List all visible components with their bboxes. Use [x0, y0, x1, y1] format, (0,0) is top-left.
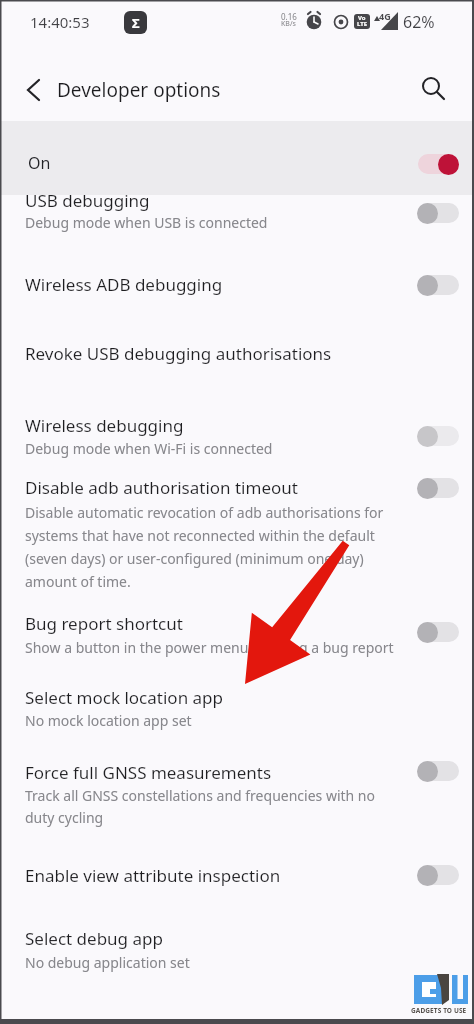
staticText: KB/s: [281, 19, 296, 29]
button[interactable]: On: [0, 121, 474, 195]
button[interactable]: Revoke USB debugging authorisations: [0, 325, 474, 377]
staticText: Vo: [358, 14, 366, 22]
button[interactable]: Force full GNSS measurements: [0, 755, 474, 845]
button[interactable]: Select debug app: [0, 910, 474, 970]
staticText: duty cycling: [25, 808, 104, 827]
staticText: USB debugging: [25, 195, 150, 212]
staticText: No debug application set: [25, 953, 190, 972]
staticText: Wireless debugging: [25, 414, 184, 437]
button[interactable]: Enable view attribute inspection: [0, 845, 474, 897]
staticText: Show a button in the power menu for fili…: [25, 638, 394, 657]
staticText: No mock location app set: [25, 711, 192, 730]
staticText: Disable adb authorisation timeout: [25, 476, 298, 499]
staticText: Select mock location app: [25, 686, 223, 709]
staticText: Debug mode when USB is connected: [25, 213, 268, 232]
button[interactable]: Wireless ADB debugging: [0, 255, 474, 311]
staticText: (seven days) or user-configured (minimum…: [25, 549, 364, 568]
staticText: 0.16: [281, 11, 297, 22]
staticText: 4G: [379, 10, 391, 22]
button[interactable]: Select mock location app: [0, 675, 474, 729]
button[interactable]: [14, 76, 50, 112]
staticText: Disable automatic revocation of adb auth…: [25, 503, 384, 522]
staticText: 62%: [403, 11, 435, 33]
button[interactable]: Disable adb authorisation timeout: [0, 470, 474, 588]
staticText: On: [28, 152, 51, 174]
staticText: amount of time.: [25, 572, 131, 591]
staticText: Force full GNSS measurements: [25, 761, 272, 784]
staticText: Revoke USB debugging authorisations: [25, 342, 332, 365]
staticText: Developer options: [57, 77, 221, 103]
button[interactable]: [416, 72, 452, 108]
button[interactable]: USB debugging: [0, 195, 474, 235]
staticText: Bug report shortcut: [25, 612, 183, 635]
button[interactable]: Wireless debugging: [0, 395, 474, 463]
staticText: Track all GNSS constellations and freque…: [25, 786, 375, 805]
staticText: GADGETS TO USE: [411, 1006, 467, 1015]
staticText: systems that have not reconnected within…: [25, 526, 375, 545]
staticText: Wireless ADB debugging: [25, 273, 223, 296]
staticText: 14:40:53: [30, 12, 90, 32]
staticText: Select debug app: [25, 927, 163, 950]
staticText: Enable view attribute inspection: [25, 864, 281, 887]
staticText: LTE: [357, 20, 368, 28]
staticText: Σ: [132, 14, 140, 32]
staticText: Debug mode when Wi-Fi is connected: [25, 439, 273, 458]
button[interactable]: Bug report shortcut: [0, 607, 474, 665]
